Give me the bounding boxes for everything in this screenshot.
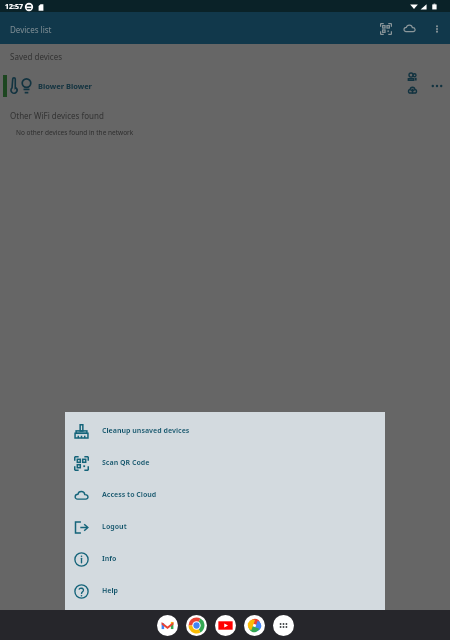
button[interactable]: All apps bbox=[273, 615, 294, 636]
staticText: No other devices found in the network bbox=[16, 128, 134, 137]
button[interactable]: Cloud bbox=[396, 15, 423, 42]
button[interactable]: Info bbox=[65, 543, 385, 575]
button[interactable]: Access to Cloud bbox=[65, 479, 385, 511]
button[interactable]: Scan QR Code bbox=[65, 447, 385, 479]
button[interactable]: YouTube bbox=[215, 615, 236, 636]
button[interactable]: More options bbox=[423, 15, 450, 42]
button[interactable]: Photos bbox=[244, 615, 265, 636]
button[interactable]: Device options bbox=[427, 76, 447, 96]
staticText: Saved devices bbox=[10, 51, 63, 62]
button[interactable]: Gmail bbox=[157, 615, 178, 636]
staticText: Info bbox=[102, 554, 117, 564]
button[interactable]: Scan QR Code bbox=[372, 15, 399, 42]
button[interactable]: Help bbox=[65, 575, 385, 607]
staticText: Other WiFi devices found bbox=[10, 110, 104, 121]
button[interactable]: Logout bbox=[65, 511, 385, 543]
staticText: Access to Cloud bbox=[102, 490, 157, 500]
button[interactable]: Cleanup unsaved devices bbox=[65, 415, 385, 447]
staticText: Help bbox=[102, 586, 119, 596]
button[interactable]: Chrome bbox=[186, 615, 207, 636]
staticText: Logout bbox=[102, 522, 127, 532]
staticText: Scan QR Code bbox=[102, 458, 150, 468]
button[interactable]: Blower Blower bbox=[0, 70, 450, 102]
staticText: 12:57 bbox=[5, 2, 23, 12]
staticText: Blower Blower bbox=[38, 81, 92, 91]
staticText: Devices list bbox=[10, 24, 52, 35]
staticText: Cleanup unsaved devices bbox=[102, 426, 190, 436]
